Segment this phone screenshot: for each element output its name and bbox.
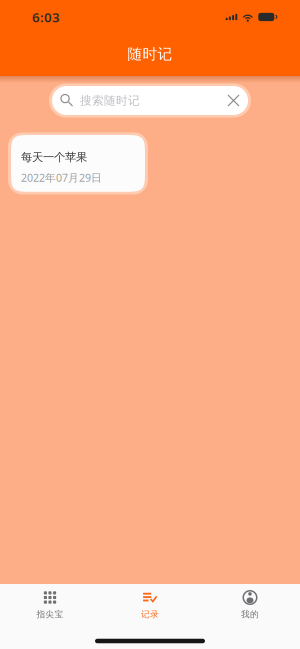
button[interactable]: 搜索随时记 <box>52 86 248 115</box>
button[interactable]: 每天一个苹果 <box>11 135 145 192</box>
staticText: 每天一个苹果 <box>21 150 87 164</box>
button[interactable]: 指尖宝 <box>0 584 100 628</box>
staticText: 2022年07月29日 <box>21 170 102 185</box>
staticText: 随时记 <box>127 45 172 63</box>
staticText: 我的 <box>241 609 259 620</box>
staticText: 搜索随时记 <box>80 93 140 108</box>
button[interactable]: 我的 <box>200 584 300 628</box>
staticText: 6:03 <box>32 8 60 26</box>
staticText: 指尖宝 <box>36 609 63 620</box>
staticText: 记录 <box>141 609 159 620</box>
button[interactable]: 记录 <box>100 584 200 628</box>
